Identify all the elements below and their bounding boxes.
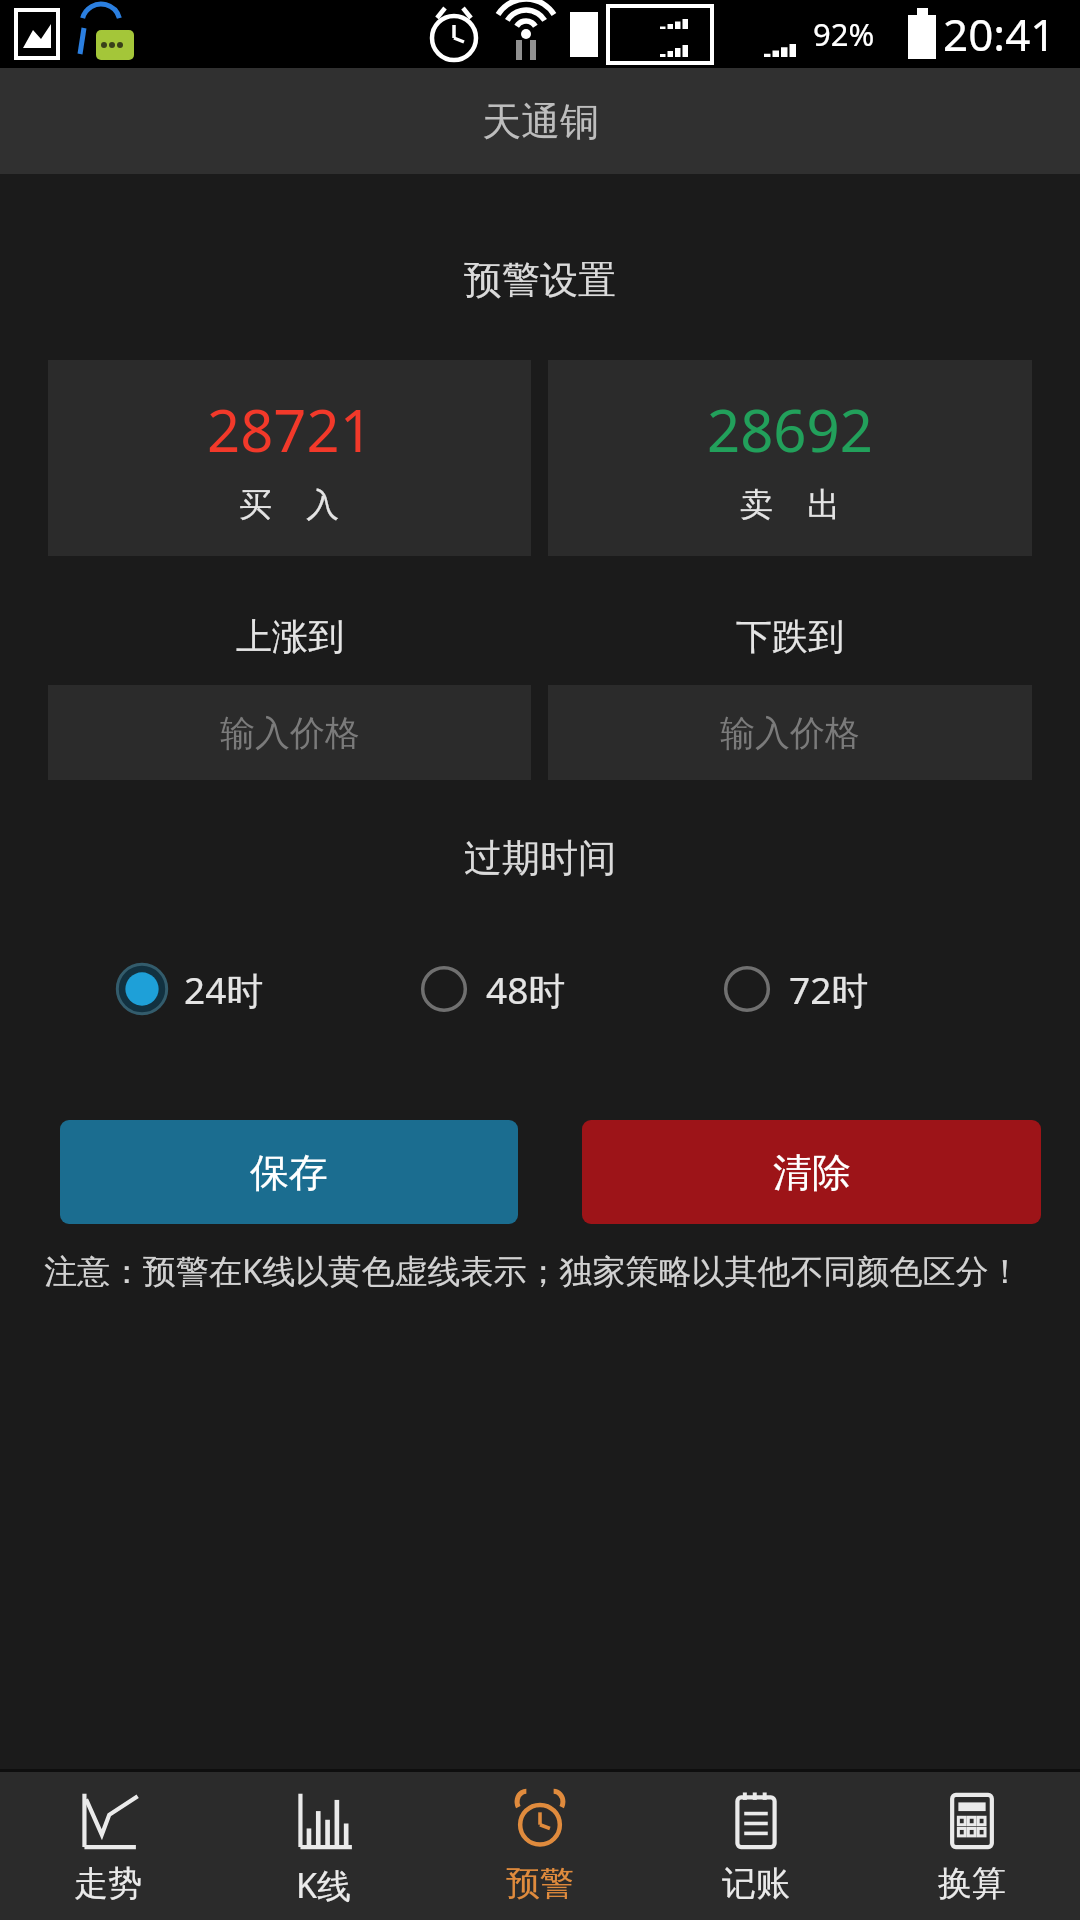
staticText: 输入价格 — [220, 711, 360, 755]
staticText: 28692 — [707, 390, 873, 469]
staticText: K线 — [296, 1862, 352, 1908]
staticText: 清除 — [773, 1148, 851, 1197]
staticText: 预警设置 — [0, 256, 1080, 304]
staticText: 上涨到 — [236, 614, 344, 659]
staticText: 买 入 — [239, 481, 340, 526]
button[interactable]: 72时 — [721, 954, 1024, 1024]
button[interactable]: K线 — [216, 1772, 432, 1920]
staticText: 预警 — [506, 1862, 574, 1905]
staticText: 48时 — [486, 964, 566, 1015]
staticText: 输入价格 — [720, 711, 860, 755]
staticText: 天通铜 — [482, 97, 599, 146]
staticText: 注意：预警在K线以黄色虚线表示；独家策略以其他不同颜色区分！ — [44, 1248, 1030, 1293]
staticText: 24时 — [184, 964, 264, 1015]
button[interactable]: 预警 — [432, 1772, 648, 1920]
button[interactable]: 记账 — [648, 1772, 864, 1920]
staticText: 过期时间 — [0, 834, 1080, 882]
staticText: 20:41 — [943, 4, 1056, 64]
staticText: 换算 — [938, 1862, 1006, 1905]
button[interactable]: 保存 — [60, 1120, 518, 1224]
button[interactable]: 28721 — [48, 360, 531, 556]
button[interactable]: 走势 — [0, 1772, 216, 1920]
button[interactable]: 输入价格 — [48, 685, 531, 780]
button[interactable]: 24时 — [116, 954, 418, 1024]
staticText: 保存 — [250, 1148, 328, 1197]
staticText: 走势 — [74, 1862, 142, 1905]
staticText: 92% — [813, 13, 875, 55]
button[interactable]: 输入价格 — [548, 685, 1032, 780]
staticText: 下跌到 — [736, 614, 844, 659]
button[interactable]: 清除 — [582, 1120, 1041, 1224]
staticText: 28721 — [207, 390, 373, 469]
staticText: 卖 出 — [740, 481, 841, 526]
button[interactable]: 换算 — [864, 1772, 1080, 1920]
staticText: 72时 — [789, 964, 869, 1015]
staticText: 记账 — [722, 1862, 790, 1905]
button[interactable]: 28692 — [548, 360, 1032, 556]
button[interactable]: 48时 — [418, 954, 721, 1024]
